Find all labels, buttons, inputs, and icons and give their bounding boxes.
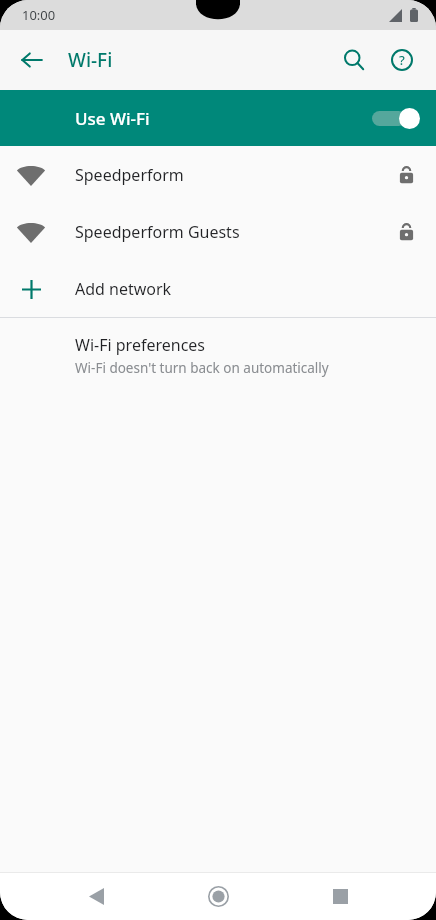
staticText: Wi-Fi preferences xyxy=(75,334,206,356)
staticText: Speedperform Guests xyxy=(75,221,240,243)
button[interactable]: Back xyxy=(8,36,56,84)
staticText: ? xyxy=(399,51,405,69)
staticText: Speedperform xyxy=(75,164,184,186)
button[interactable]: Speedperform Guests xyxy=(0,203,436,260)
button[interactable]: Home xyxy=(192,873,244,920)
staticText: 10:00 xyxy=(22,6,56,24)
button[interactable]: Recent apps xyxy=(314,873,366,920)
button[interactable]: Add network xyxy=(0,260,436,317)
button[interactable]: Back xyxy=(70,873,122,920)
staticText: Wi-Fi xyxy=(68,47,113,73)
staticText: Wi-Fi doesn't turn back on automatically xyxy=(75,359,329,377)
button[interactable]: Use Wi-Fi xyxy=(0,90,436,146)
staticText: Use Wi-Fi xyxy=(75,107,150,130)
button[interactable]: Wi-Fi preferences xyxy=(0,318,436,393)
button[interactable]: Search xyxy=(330,36,378,84)
button[interactable]: Help xyxy=(378,36,426,84)
staticText: Add network xyxy=(75,278,172,300)
button[interactable]: Speedperform xyxy=(0,146,436,203)
